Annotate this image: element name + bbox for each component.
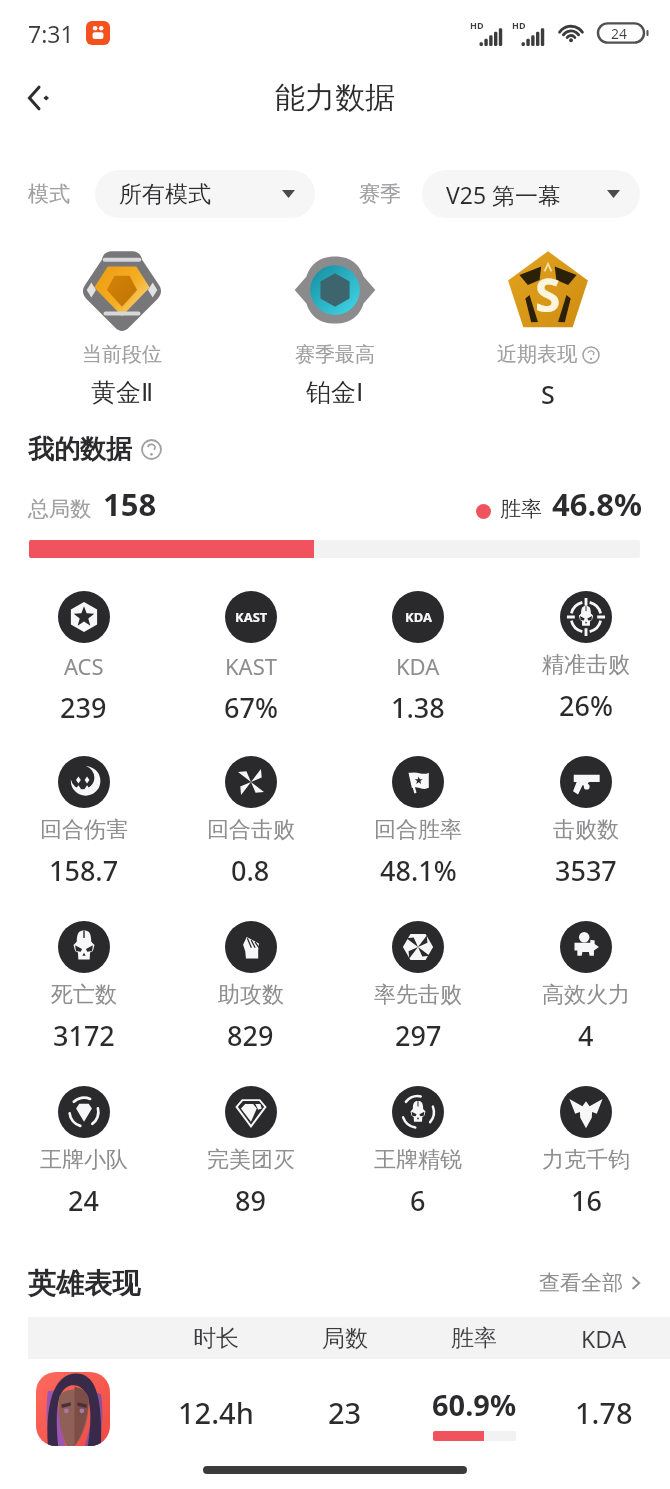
button[interactable]: KAST: [167, 591, 334, 726]
button[interactable]: 高效火力: [502, 921, 670, 1054]
staticText: 我的数据: [28, 433, 132, 466]
button[interactable]: 王牌精锐: [334, 1086, 502, 1219]
staticText: 158: [103, 483, 157, 525]
button[interactable]: 精准击败: [502, 591, 670, 724]
staticText: S: [541, 377, 555, 408]
staticText: 3172: [53, 1017, 115, 1054]
staticText: KAST: [225, 651, 277, 681]
staticText: KDA: [581, 1323, 627, 1354]
staticText: 时长: [193, 1324, 239, 1353]
staticText: 胜率: [500, 496, 542, 522]
staticText: 6: [410, 1182, 426, 1219]
button[interactable]: 回合击败: [167, 756, 334, 889]
staticText: KDA: [405, 608, 432, 626]
button[interactable]: 所有模式: [95, 170, 315, 218]
button[interactable]: S: [438, 248, 658, 408]
staticText: 王牌小队: [40, 1146, 128, 1174]
staticText: 89: [235, 1182, 266, 1219]
button[interactable]: 当前段位: [12, 248, 232, 408]
button[interactable]: ACS: [0, 591, 167, 726]
staticText: V25 第一幕: [446, 179, 562, 210]
button[interactable]: 助攻数: [167, 921, 334, 1054]
staticText: ACS: [64, 651, 104, 681]
staticText: 0.8: [231, 852, 270, 889]
staticText: 精准击败: [542, 651, 630, 679]
button[interactable]: 击败数: [502, 756, 670, 889]
staticText: 24: [68, 1182, 99, 1219]
staticText: 局数: [322, 1324, 368, 1353]
staticText: 完美团灭: [207, 1146, 295, 1174]
staticText: 铂金Ⅰ: [306, 377, 364, 408]
staticText: 48.1%: [380, 852, 457, 889]
staticText: 赛季: [359, 181, 401, 207]
staticText: 王牌精锐: [374, 1146, 462, 1174]
button[interactable]: 回合胜率: [334, 756, 502, 889]
staticText: 助攻数: [218, 981, 284, 1009]
staticText: 近期表现: [497, 342, 577, 367]
staticText: 7:31: [28, 18, 74, 48]
staticText: 力克千钧: [542, 1146, 630, 1174]
staticText: 回合伤害: [40, 816, 128, 844]
staticText: 24: [611, 24, 628, 43]
button[interactable]: 回合伤害: [0, 756, 167, 889]
staticText: 3537: [555, 852, 617, 889]
staticText: KDA: [396, 651, 440, 681]
staticText: 所有模式: [119, 180, 211, 209]
button[interactable]: V25 第一幕: [422, 170, 640, 218]
staticText: 12.4h: [178, 1393, 254, 1432]
staticText: 能力数据: [275, 79, 395, 117]
staticText: 回合胜率: [374, 816, 462, 844]
button[interactable]: 查看全部: [539, 1270, 644, 1296]
button[interactable]: Back: [8, 67, 70, 129]
staticText: 297: [395, 1017, 442, 1054]
staticText: 率先击败: [374, 981, 462, 1009]
staticText: 23: [328, 1393, 362, 1432]
button[interactable]: 完美团灭: [167, 1086, 334, 1219]
staticText: 胜率: [451, 1324, 497, 1353]
staticText: KAST: [235, 608, 268, 626]
button[interactable]: 赛季最高: [225, 248, 445, 408]
button[interactable]: 12.4h: [0, 1360, 670, 1460]
staticText: 查看全部: [539, 1270, 623, 1296]
staticText: 16: [571, 1182, 602, 1219]
staticText: HD: [470, 19, 484, 31]
staticText: 829: [227, 1017, 274, 1054]
button[interactable]: 力克千钧: [502, 1086, 670, 1219]
staticText: 回合击败: [207, 816, 295, 844]
staticText: HD: [512, 19, 526, 31]
staticText: 总局数: [28, 496, 91, 522]
staticText: 1.78: [575, 1393, 633, 1432]
staticText: 60.9%: [432, 1385, 517, 1424]
staticText: 高效火力: [542, 981, 630, 1009]
staticText: S: [535, 263, 561, 326]
staticText: 模式: [28, 181, 70, 207]
staticText: 4: [578, 1017, 594, 1054]
staticText: 英雄表现: [28, 1266, 140, 1301]
button[interactable]: 王牌小队: [0, 1086, 167, 1219]
staticText: 239: [60, 689, 107, 726]
staticText: 26%: [559, 687, 613, 724]
staticText: 死亡数: [51, 981, 117, 1009]
staticText: 黄金Ⅱ: [91, 377, 154, 408]
button[interactable]: 率先击败: [334, 921, 502, 1054]
staticText: 当前段位: [82, 342, 162, 367]
staticText: 46.8%: [552, 483, 642, 525]
button[interactable]: 死亡数: [0, 921, 167, 1054]
staticText: 158.7: [49, 852, 119, 889]
staticText: 击败数: [553, 816, 619, 844]
staticText: 赛季最高: [295, 342, 375, 367]
button[interactable]: KDA: [334, 591, 502, 726]
staticText: 67%: [224, 689, 278, 726]
staticText: 1.38: [391, 689, 445, 726]
